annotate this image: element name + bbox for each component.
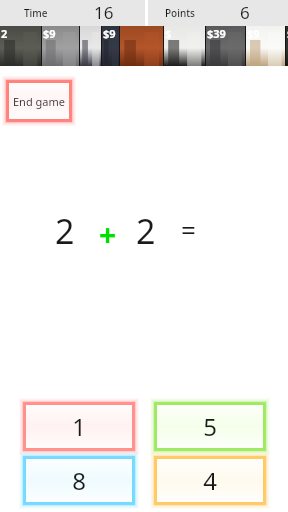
staticText: 8 (72, 464, 86, 497)
staticText: 2 (136, 208, 156, 254)
staticText: $9 (103, 26, 116, 41)
button[interactable]: 8 (19, 452, 139, 509)
staticText: $9 (43, 26, 56, 41)
staticText: 4 (203, 464, 217, 497)
staticText: $39 (207, 26, 226, 41)
button[interactable]: 1 (19, 398, 139, 455)
button[interactable]: Points (148, 0, 288, 26)
staticText: Points (165, 6, 195, 20)
button[interactable]: 4 (150, 452, 270, 509)
staticText: End game (13, 94, 65, 109)
staticText: 2 (1, 26, 8, 41)
button[interactable]: Advertisement (0, 26, 288, 66)
staticText: 5 (203, 410, 217, 443)
staticText: Time (24, 6, 48, 20)
staticText: 2 (55, 208, 75, 254)
staticText: $30 (287, 26, 288, 41)
staticText: 1 (72, 410, 86, 443)
staticText: = (181, 212, 196, 247)
staticText: 6 (240, 1, 250, 24)
button[interactable]: End game (2, 76, 76, 126)
button[interactable]: 5 (150, 398, 270, 455)
staticText: 16 (94, 1, 114, 24)
staticText: $9 (247, 26, 260, 41)
staticText: + (99, 214, 117, 255)
staticText: $ (165, 26, 172, 41)
button[interactable]: Time (0, 0, 145, 26)
